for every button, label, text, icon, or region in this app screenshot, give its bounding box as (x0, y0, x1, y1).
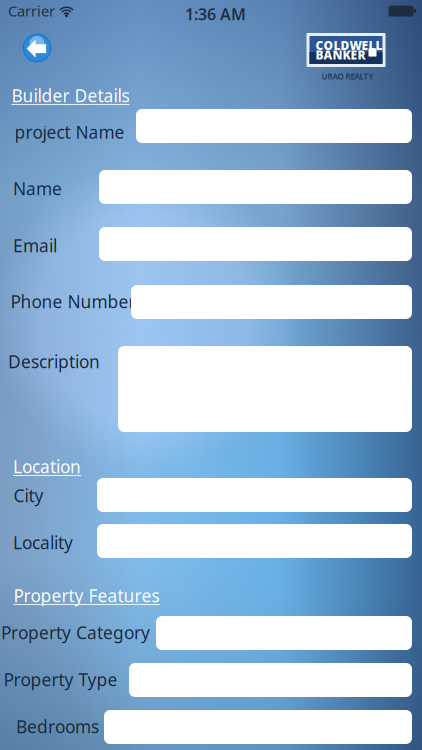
button[interactable]: Email (99, 227, 412, 261)
staticText: Description (8, 350, 100, 373)
staticText: Location (13, 455, 81, 478)
button[interactable]: City (97, 478, 412, 512)
button[interactable]: Back (22, 33, 51, 63)
staticText: Property Category (1, 621, 150, 644)
staticText: 1:36 AM (185, 3, 246, 25)
staticText: Phone Number (10, 290, 135, 313)
staticText: project Name (14, 120, 124, 143)
button[interactable]: Description (118, 346, 412, 432)
staticText: City (13, 484, 43, 507)
button[interactable]: Property Type (129, 663, 412, 697)
button[interactable]: Locality (97, 524, 412, 558)
button[interactable]: project Name (136, 109, 412, 143)
button[interactable]: Phone Number (131, 285, 412, 319)
staticText: Carrier (8, 1, 55, 20)
staticText: URAO REALTY (321, 71, 373, 82)
staticText: Builder Details (11, 84, 129, 107)
staticText: BANKER (315, 47, 365, 63)
staticText: Name (13, 177, 62, 200)
staticText: Property Features (13, 584, 159, 607)
staticText: COLDWELL (315, 37, 382, 53)
button[interactable]: Bedrooms (104, 710, 412, 744)
staticText: Bedrooms (16, 715, 99, 738)
staticText: Locality (13, 531, 73, 554)
staticText: Property Type (3, 668, 117, 691)
button[interactable]: Name (99, 170, 412, 204)
button[interactable]: Property Category (156, 616, 412, 650)
staticText: Email (13, 234, 57, 257)
